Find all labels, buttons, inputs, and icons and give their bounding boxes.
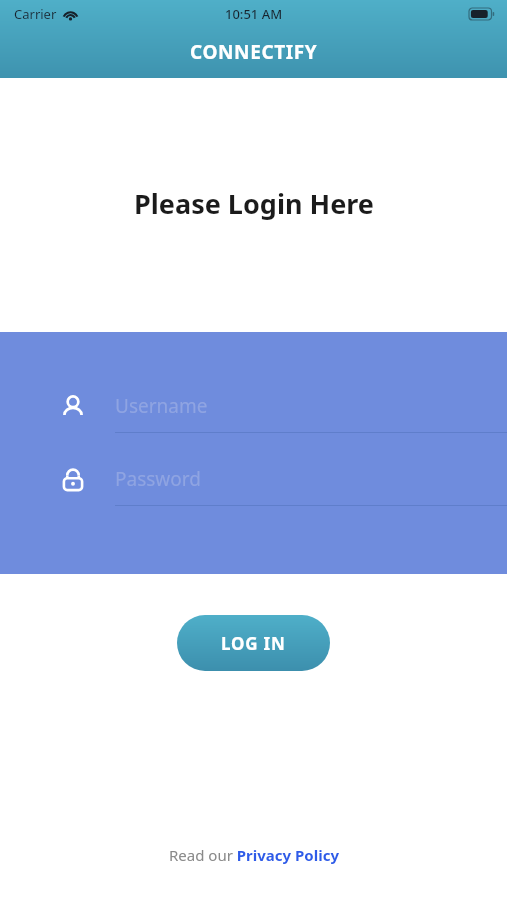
staticText: Password: [115, 466, 201, 492]
staticText: Please Login Here: [134, 185, 374, 222]
other: Password: [60, 467, 86, 493]
staticText: 10:51 AM: [225, 5, 283, 23]
staticText: Username: [115, 393, 208, 419]
staticText: Read our Privacy Policy: [169, 845, 339, 865]
staticText: LOG IN: [221, 632, 286, 655]
staticText: Carrier: [14, 5, 57, 23]
staticText: CONNECTIFY: [190, 39, 318, 65]
button[interactable]: Password: [0, 462, 507, 506]
button[interactable]: LOG IN: [177, 615, 330, 671]
button[interactable]: Read our Privacy Policy: [163, 841, 345, 869]
other: Username: [60, 394, 86, 420]
button[interactable]: Username: [0, 389, 507, 433]
